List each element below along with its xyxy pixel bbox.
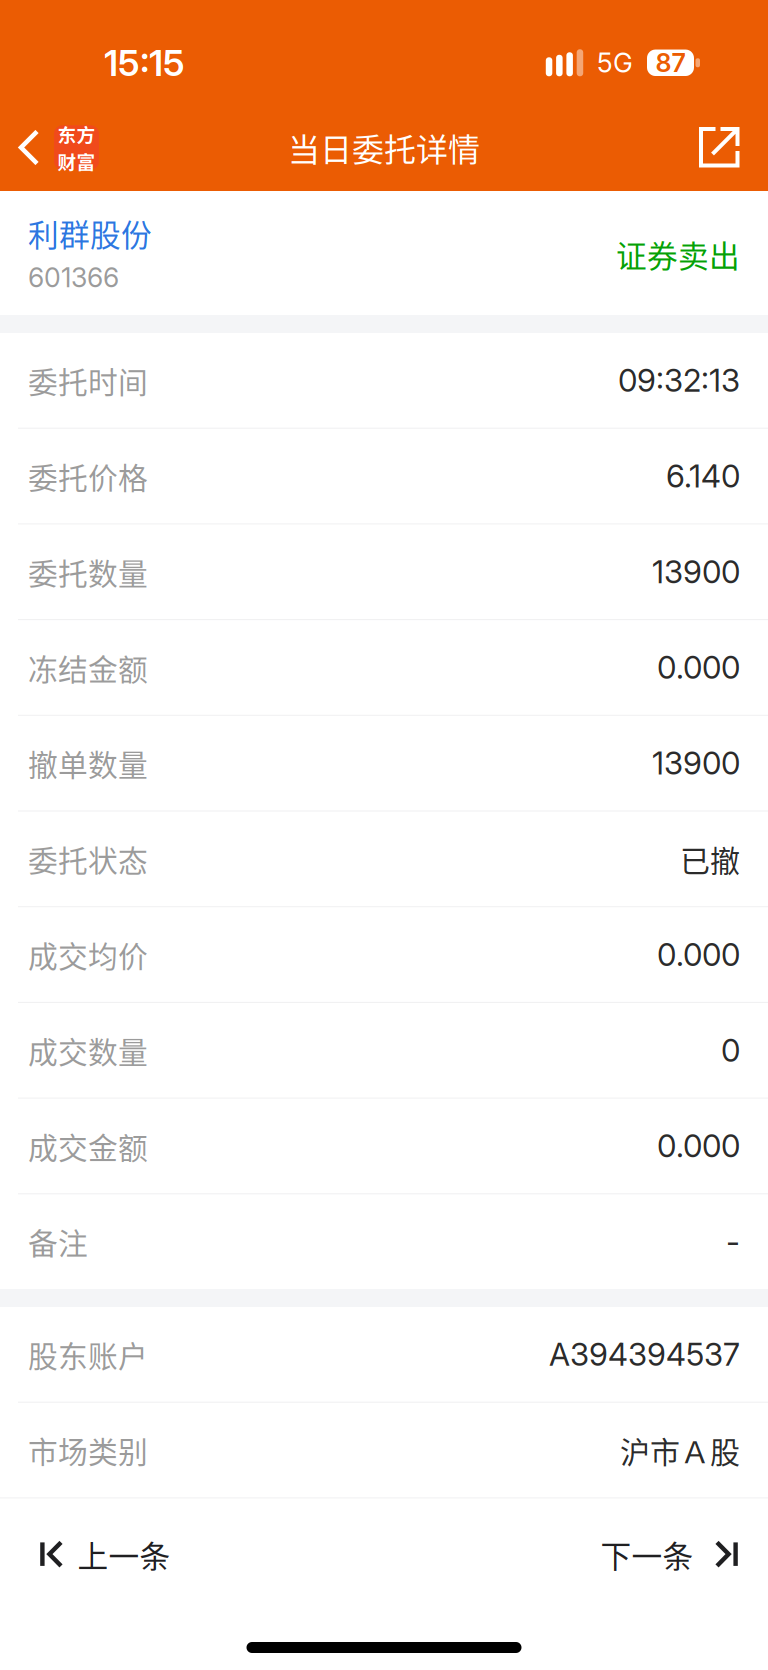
staticText: 成交数量 <box>28 1029 148 1072</box>
staticText: 0.000 <box>657 936 740 973</box>
staticText: 成交金额 <box>28 1124 148 1167</box>
staticText: 0 <box>721 1031 740 1069</box>
staticText: 上一条 <box>77 1532 170 1577</box>
staticText: 委托状态 <box>28 837 148 880</box>
button[interactable]: Back <box>0 104 111 191</box>
staticText: - <box>726 1223 740 1261</box>
staticText: 利群股份 <box>28 211 152 255</box>
button[interactable]: 成交数量 <box>0 1003 768 1098</box>
button[interactable]: 成交均价 <box>0 907 768 1002</box>
staticText: 0.000 <box>657 648 740 686</box>
staticText: 下一条 <box>601 1532 694 1577</box>
staticText: 冻结金额 <box>28 646 148 689</box>
staticText: 09:32:13 <box>618 361 740 399</box>
staticText: 6.140 <box>666 457 740 495</box>
button[interactable]: 冻结金额 <box>0 620 768 715</box>
staticText: 13900 <box>652 553 740 591</box>
staticText: 备注 <box>28 1220 88 1263</box>
staticText: 撤单数量 <box>28 742 148 785</box>
button[interactable]: 成交金额 <box>0 1099 768 1193</box>
staticText: 已撤 <box>680 837 740 880</box>
staticText: 87 <box>655 47 685 78</box>
button[interactable]: 股东账户 <box>0 1307 768 1402</box>
staticText: 委托价格 <box>28 454 148 498</box>
staticText: 委托数量 <box>28 550 148 593</box>
staticText: 股东账户 <box>28 1333 148 1376</box>
staticText: 13900 <box>652 744 740 782</box>
staticText: 委托时间 <box>28 359 148 402</box>
staticText: 0.000 <box>657 1127 740 1165</box>
button[interactable]: 委托时间 <box>0 333 768 428</box>
staticText: 601366 <box>28 261 119 294</box>
button[interactable]: 委托数量 <box>0 524 768 619</box>
staticText: 证券卖出 <box>616 232 740 276</box>
staticText: 15:15 <box>104 41 185 85</box>
button[interactable]: 下一条 <box>571 1498 768 1610</box>
button[interactable]: 撤单数量 <box>0 716 768 810</box>
staticText: 东方 <box>57 120 95 147</box>
button[interactable]: 上一条 <box>0 1498 200 1610</box>
button[interactable]: 备注 <box>0 1194 768 1289</box>
button[interactable]: Share <box>679 104 768 191</box>
staticText: 5G <box>597 47 633 79</box>
staticText: 沪市Ａ股 <box>620 1428 740 1472</box>
staticText: 成交均价 <box>28 933 148 976</box>
button[interactable]: 市场类别 <box>0 1403 768 1497</box>
button[interactable]: 委托价格 <box>0 429 768 523</box>
staticText: 当日委托详情 <box>288 124 480 171</box>
staticText: A394394537 <box>549 1335 740 1373</box>
button[interactable]: 委托状态 <box>0 811 768 906</box>
staticText: 市场类别 <box>28 1428 148 1472</box>
staticText: 财富 <box>57 147 95 174</box>
